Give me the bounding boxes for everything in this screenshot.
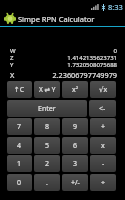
button[interactable]: Enter (7, 100, 87, 117)
staticText: 8:33 (108, 2, 123, 12)
staticText: 2 (45, 159, 50, 169)
staticText: 1 (17, 159, 22, 169)
staticText: Simpe RPN Calculator (18, 14, 95, 24)
staticText: . (46, 178, 48, 188)
button[interactable]: √x (90, 81, 116, 98)
button[interactable]: - (90, 155, 116, 172)
button[interactable]: <- (89, 100, 116, 117)
staticText: X (10, 70, 15, 80)
button[interactable]: 5 (34, 137, 60, 154)
staticText: 7 (17, 122, 22, 132)
button[interactable]: 4 (7, 137, 32, 154)
staticText: <- (99, 104, 106, 114)
staticText: x (101, 141, 105, 151)
button[interactable]: x (90, 137, 116, 154)
staticText: +/- (71, 178, 80, 188)
staticText: X ⇄ Y (39, 85, 56, 94)
staticText: 0 (113, 47, 117, 55)
button[interactable]: 6 (62, 137, 88, 154)
button[interactable]: . (34, 174, 60, 191)
button[interactable]: 3 (62, 155, 88, 172)
staticText: 5 (45, 141, 50, 151)
button[interactable]: 9 (62, 118, 88, 135)
button[interactable]: 1 (7, 155, 32, 172)
staticText: W (10, 47, 16, 55)
staticText: 8 (45, 122, 50, 132)
staticText: + (101, 122, 106, 132)
staticText: x² (72, 85, 79, 95)
staticText: ↑C (14, 85, 25, 95)
staticText: 2.23606797749979 (52, 70, 117, 80)
button[interactable]: 2 (34, 155, 60, 172)
button[interactable]: ↑C (7, 81, 32, 98)
staticText: Z (10, 54, 14, 62)
button[interactable]: 0 (7, 174, 32, 191)
staticText: 1.7320508075688 (67, 61, 117, 69)
button[interactable]: ÷ (90, 174, 116, 191)
staticText: 3 (73, 159, 78, 169)
staticText: 6 (73, 141, 78, 151)
staticText: 4 (17, 141, 22, 151)
staticText: ÷ (101, 178, 106, 188)
staticText: - (102, 159, 105, 169)
button[interactable]: 7 (7, 118, 32, 135)
staticText: 1.4142135623731 (67, 54, 117, 62)
staticText: Y (10, 61, 14, 69)
staticText: √x (99, 85, 108, 95)
button[interactable]: +/- (62, 174, 88, 191)
staticText: 0 (17, 178, 22, 188)
button[interactable]: + (90, 118, 116, 135)
button[interactable]: X ⇄ Y (34, 81, 60, 98)
staticText: Enter (38, 104, 56, 114)
button[interactable]: 8 (34, 118, 60, 135)
button[interactable]: x² (62, 81, 88, 98)
staticText: 9 (73, 122, 78, 132)
